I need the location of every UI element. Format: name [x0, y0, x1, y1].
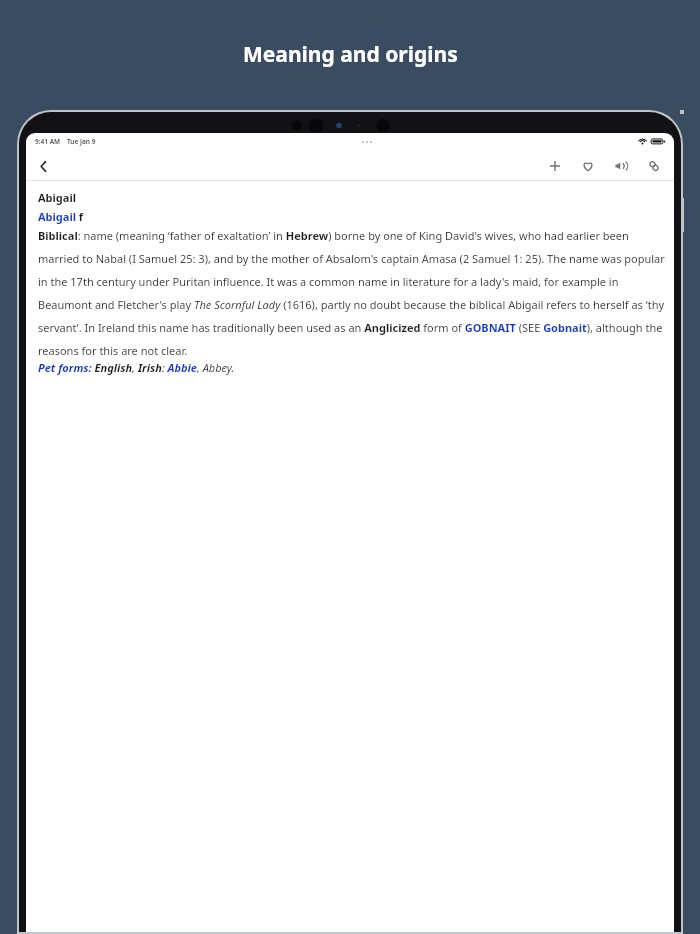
staticText: Abigail f: [38, 209, 84, 224]
button[interactable]: Add: [545, 156, 565, 176]
button[interactable]: Favorite: [578, 156, 598, 176]
staticText: Pet forms: English, Irish: Abbie, Abbey.: [38, 360, 235, 375]
staticText: Tue Jan 9: [67, 137, 96, 146]
button[interactable]: Share link: [644, 156, 664, 176]
staticText: Abigail: [38, 190, 76, 205]
button[interactable]: Pronounce: [611, 156, 631, 176]
button[interactable]: Back: [30, 153, 56, 179]
staticText: Meaning and origins: [243, 40, 458, 69]
staticText: Biblical: name (meaning ‘father of exalt…: [38, 228, 666, 358]
staticText: 9:41 AM: [35, 137, 61, 146]
